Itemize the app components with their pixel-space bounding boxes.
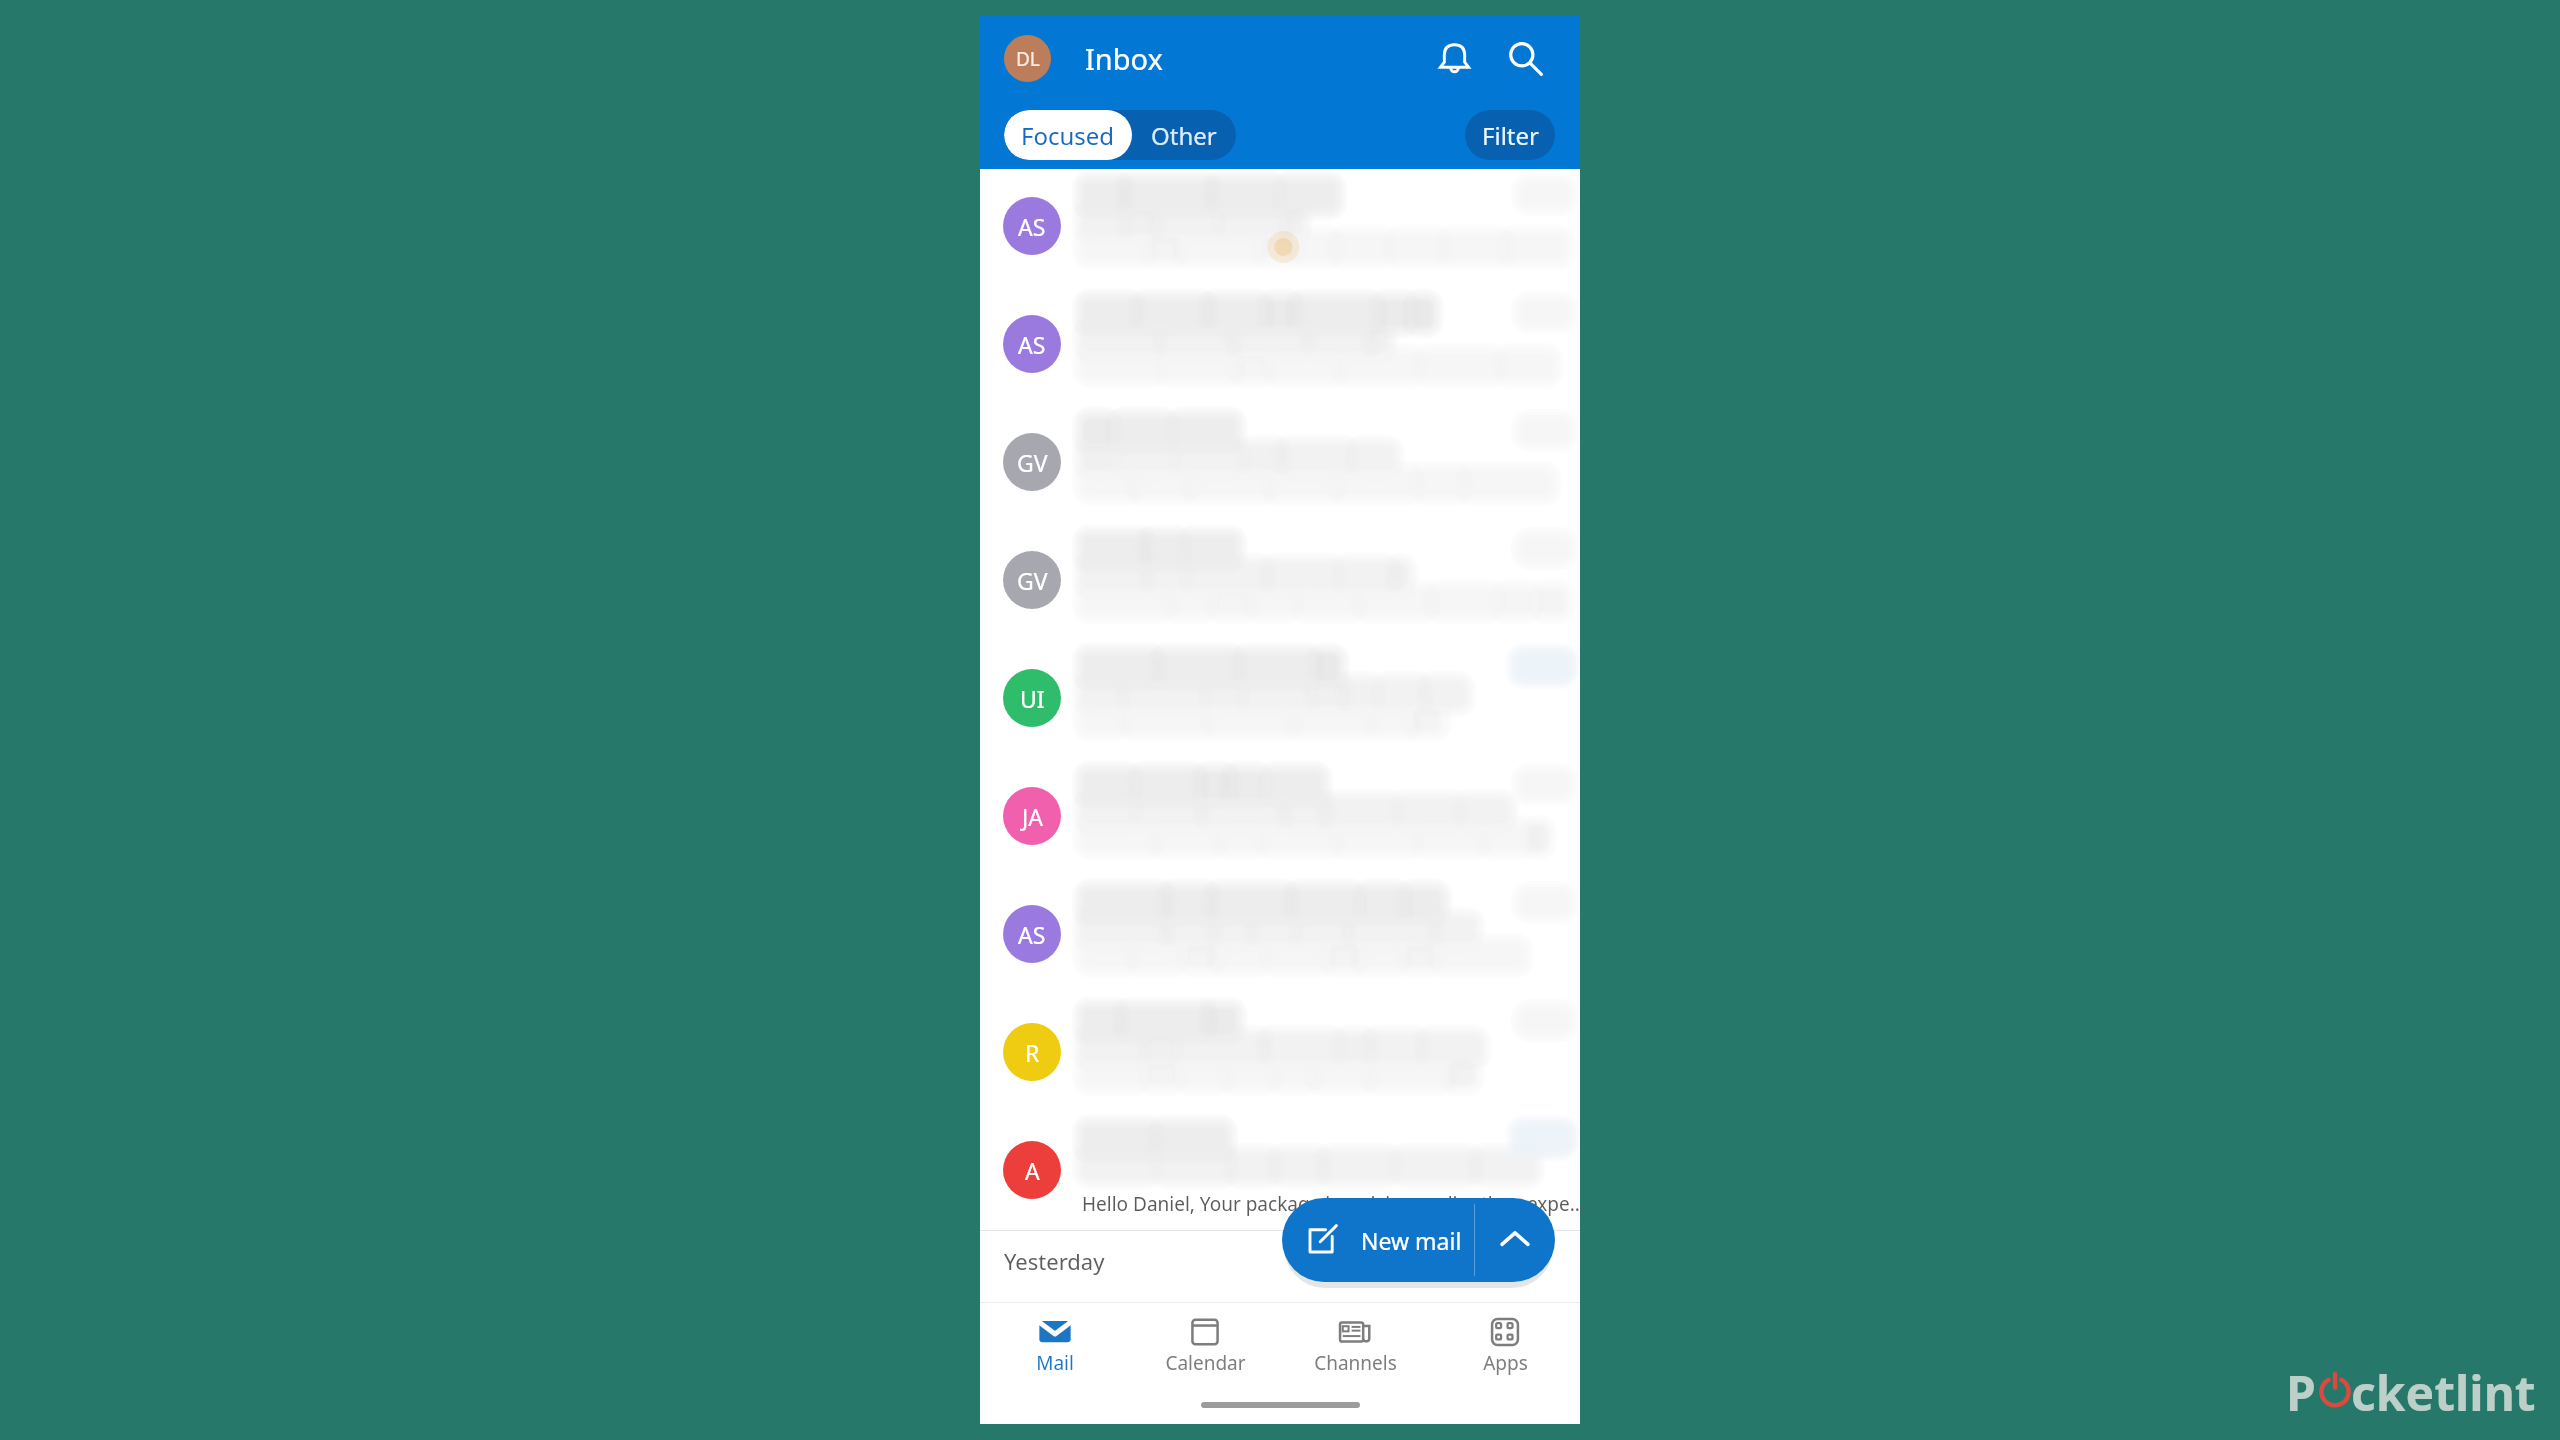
button[interactable]: GV xyxy=(980,523,1580,641)
staticText: Mail xyxy=(1036,1350,1074,1376)
button[interactable]: Apps xyxy=(1430,1315,1580,1376)
button[interactable]: Filter xyxy=(1465,110,1555,160)
staticText: Inbox xyxy=(1085,39,1163,78)
button[interactable]: Mail xyxy=(980,1315,1130,1376)
staticText: GV xyxy=(1017,447,1048,478)
button[interactable]: JA xyxy=(980,759,1580,877)
button[interactable]: More compose options xyxy=(1475,1198,1555,1282)
button[interactable]: New mail xyxy=(1282,1198,1474,1282)
button[interactable]: Calendar xyxy=(1130,1315,1280,1376)
staticText: Channels xyxy=(1314,1350,1397,1376)
button[interactable]: Focused xyxy=(1004,110,1132,160)
staticText: UI xyxy=(1020,683,1045,714)
button[interactable]: Channels xyxy=(1280,1315,1430,1376)
button[interactable]: R xyxy=(980,995,1580,1113)
button[interactable]: AS xyxy=(980,169,1580,287)
staticText: AS xyxy=(1018,329,1046,360)
staticText: R xyxy=(1025,1037,1040,1068)
button[interactable]: Other xyxy=(1132,110,1236,160)
staticText: JA xyxy=(1022,801,1043,832)
staticText: Apps xyxy=(1483,1350,1528,1376)
button[interactable]: A xyxy=(980,1113,1580,1231)
staticText: A xyxy=(1025,1155,1040,1186)
button[interactable]: Notifications xyxy=(1431,35,1478,82)
button[interactable]: AS xyxy=(980,877,1580,995)
button[interactable]: Account xyxy=(1004,35,1051,82)
staticText: New mail xyxy=(1361,1225,1462,1256)
button[interactable]: GV xyxy=(980,405,1580,523)
staticText: Filter xyxy=(1482,119,1539,152)
button[interactable]: UI xyxy=(980,641,1580,759)
staticText: Hello Daniel, Your package is arriving e… xyxy=(1082,1191,1585,1217)
staticText: DL xyxy=(1016,46,1040,72)
staticText: AS xyxy=(1018,211,1046,242)
button[interactable]: AS xyxy=(980,287,1580,405)
staticText: GV xyxy=(1017,565,1048,596)
staticText: Calendar xyxy=(1165,1350,1246,1376)
button[interactable]: Search xyxy=(1502,35,1549,82)
staticText: cketlint xyxy=(2351,1360,2536,1425)
staticText: Other xyxy=(1151,119,1217,152)
staticText: P xyxy=(2286,1360,2316,1425)
staticText: AS xyxy=(1018,919,1046,950)
staticText: Focused xyxy=(1021,119,1115,152)
staticText: Yesterday xyxy=(1004,1246,1105,1276)
